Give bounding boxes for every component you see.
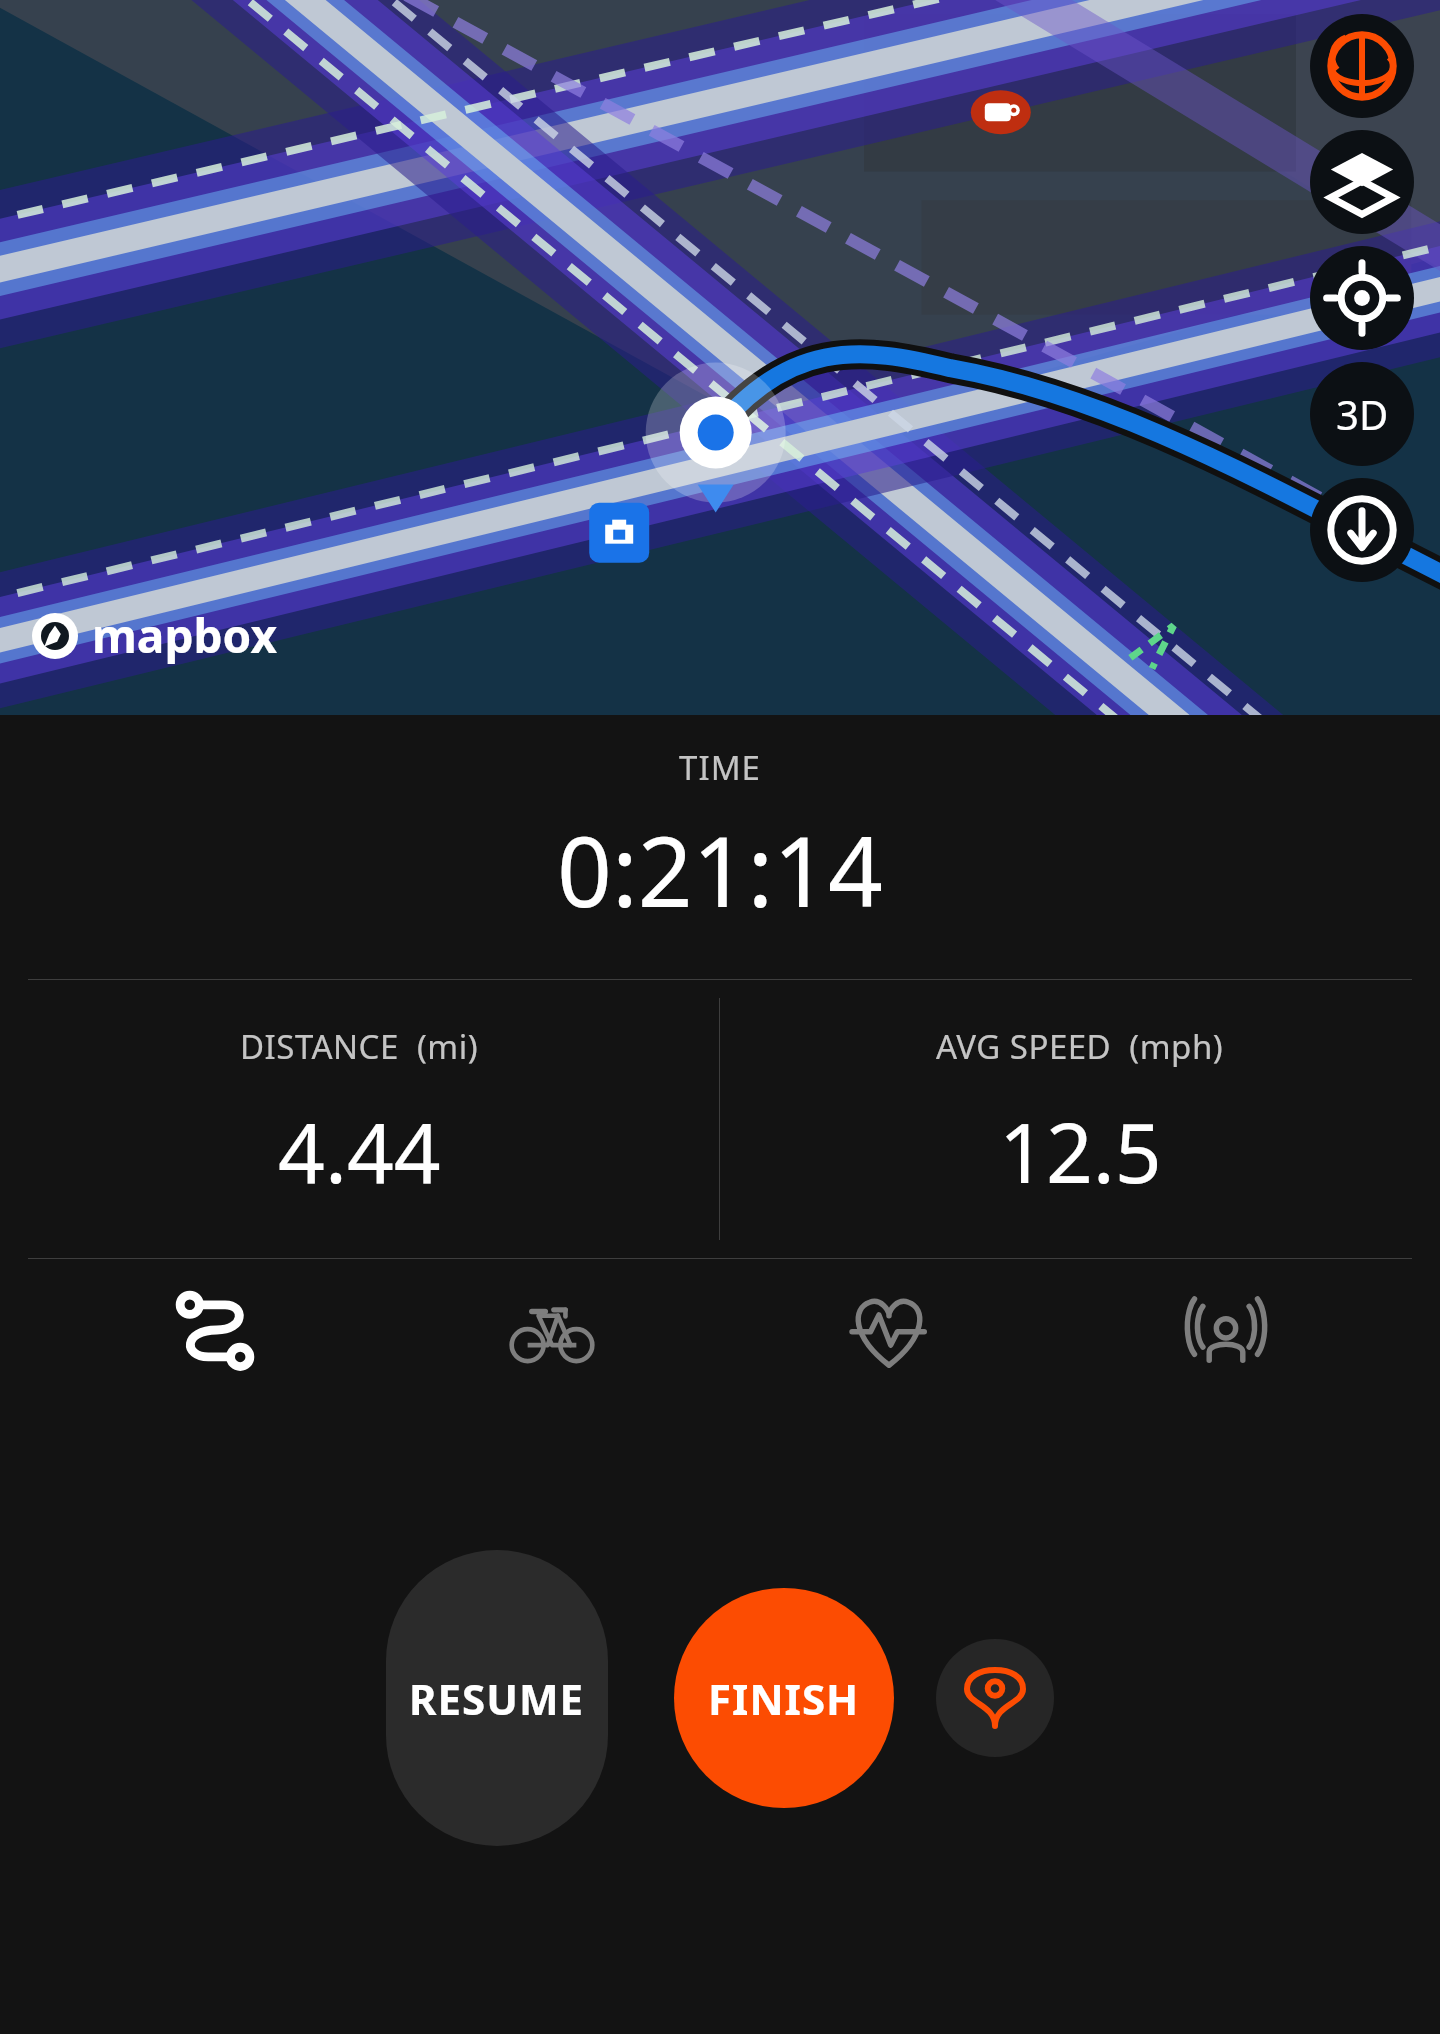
staticText: DISTANCE (mi) <box>240 1024 479 1069</box>
button[interactable]: Beacon <box>1057 1259 1394 1401</box>
button[interactable]: My location <box>1310 246 1414 350</box>
button[interactable]: Add waypoint <box>936 1639 1054 1757</box>
button[interactable]: RESUME <box>386 1550 608 1846</box>
staticText: 3D <box>1336 387 1389 441</box>
staticText: 12.5 <box>999 1095 1162 1207</box>
staticText: FINISH <box>708 1670 860 1727</box>
staticText: RESUME <box>409 1670 585 1727</box>
button[interactable]: Activity type <box>383 1259 720 1401</box>
button[interactable]: Download offline map <box>1310 478 1414 582</box>
staticText: 4.44 <box>278 1095 441 1207</box>
staticText: AVG SPEED (mph) <box>936 1024 1224 1069</box>
staticText: TIME <box>0 745 1440 790</box>
button[interactable]: Route <box>46 1259 383 1401</box>
button[interactable]: Heart rate <box>720 1259 1057 1401</box>
button[interactable]: Layers <box>1310 130 1414 234</box>
staticText: mapbox <box>92 604 277 667</box>
button[interactable]: FINISH <box>674 1588 894 1808</box>
button[interactable]: Map style <box>1310 14 1414 118</box>
button[interactable]: 3D view <box>1310 362 1414 466</box>
staticText: 0:21:14 <box>0 804 1440 935</box>
